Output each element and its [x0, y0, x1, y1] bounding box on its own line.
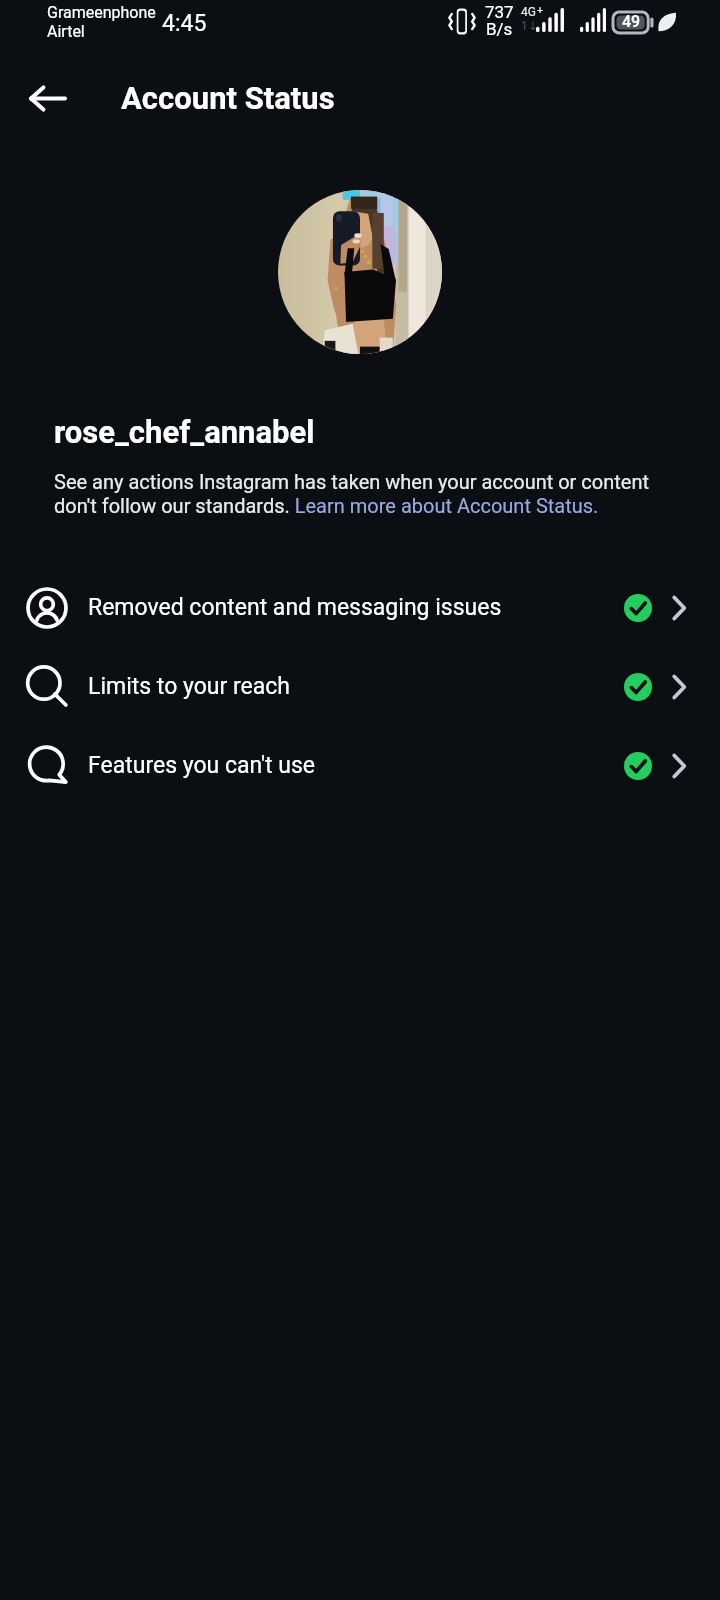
staticText: Airtel	[47, 22, 85, 41]
staticText: Grameenphone	[47, 3, 156, 22]
staticText: 737	[485, 4, 514, 22]
staticText: Features you can't use	[88, 752, 624, 779]
staticText: 4G	[521, 6, 536, 19]
staticText: Removed content and messaging issues	[88, 594, 624, 621]
button[interactable]: Removed content and messaging issues	[0, 568, 720, 647]
staticText: Account Status	[121, 80, 335, 116]
staticText: +	[537, 4, 544, 16]
staticText: rose_chef_annabel	[54, 414, 315, 450]
staticText: 1↓	[521, 20, 538, 33]
staticText: 4:45	[162, 10, 207, 36]
staticText: Limits to your reach	[88, 673, 624, 700]
button[interactable]: Limits to your reach	[0, 647, 720, 726]
staticText: 49	[622, 14, 641, 31]
staticText: B/s	[486, 21, 513, 39]
button[interactable]: See any actions Instagram has taken when…	[54, 470, 654, 518]
button[interactable]: Features you can't use	[0, 726, 720, 805]
button[interactable]: Back	[10, 70, 85, 126]
staticText: See any actions Instagram has taken when…	[54, 470, 654, 518]
